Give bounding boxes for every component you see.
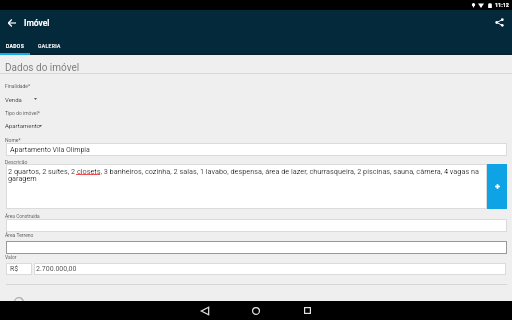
button[interactable]: Add — [487, 164, 507, 209]
button[interactable]: Share — [491, 14, 508, 31]
button[interactable] — [6, 219, 507, 232]
staticText: Descrição — [5, 159, 28, 165]
button[interactable]: Home — [243, 301, 269, 320]
staticText: Área Construída — [5, 214, 40, 220]
staticText: Apartamento — [5, 122, 41, 129]
staticText: Imóvel — [24, 18, 50, 28]
staticText: Tipo do imóvel* — [5, 110, 40, 116]
staticText: R$ — [10, 265, 19, 273]
staticText: Dados do imóvel — [5, 62, 80, 74]
staticText: 2.700.000,00 — [36, 265, 77, 273]
staticText: Apartamento Vila Olimpia — [10, 146, 90, 154]
button[interactable]: Apartamento Vila Olimpia — [6, 143, 507, 156]
staticText: Área Terreno — [5, 232, 34, 238]
staticText: 11:12 — [495, 2, 509, 8]
staticText: Valor — [5, 254, 17, 260]
button[interactable]: DADOS — [0, 39, 30, 53]
button[interactable]: Back — [192, 301, 218, 320]
staticText: DADOS — [6, 43, 25, 49]
staticText: Finalidade* — [5, 83, 31, 89]
button[interactable]: Back — [6, 17, 18, 29]
button[interactable] — [6, 241, 507, 254]
staticText: Nome* — [5, 137, 21, 143]
button[interactable]: GALERIA — [30, 39, 68, 53]
button[interactable]: R$ — [6, 263, 32, 275]
staticText: GALERIA — [38, 43, 61, 49]
staticText: Venda — [5, 96, 22, 103]
button[interactable]: Recent apps — [294, 301, 320, 320]
staticText: 2 quartos, 2 suítes, 2 closets, 3 banhei… — [8, 167, 482, 183]
button[interactable]: 2 quartos, 2 suítes, 2 closets, 3 banhei… — [6, 164, 487, 209]
button[interactable]: 2.700.000,00 — [34, 263, 506, 275]
